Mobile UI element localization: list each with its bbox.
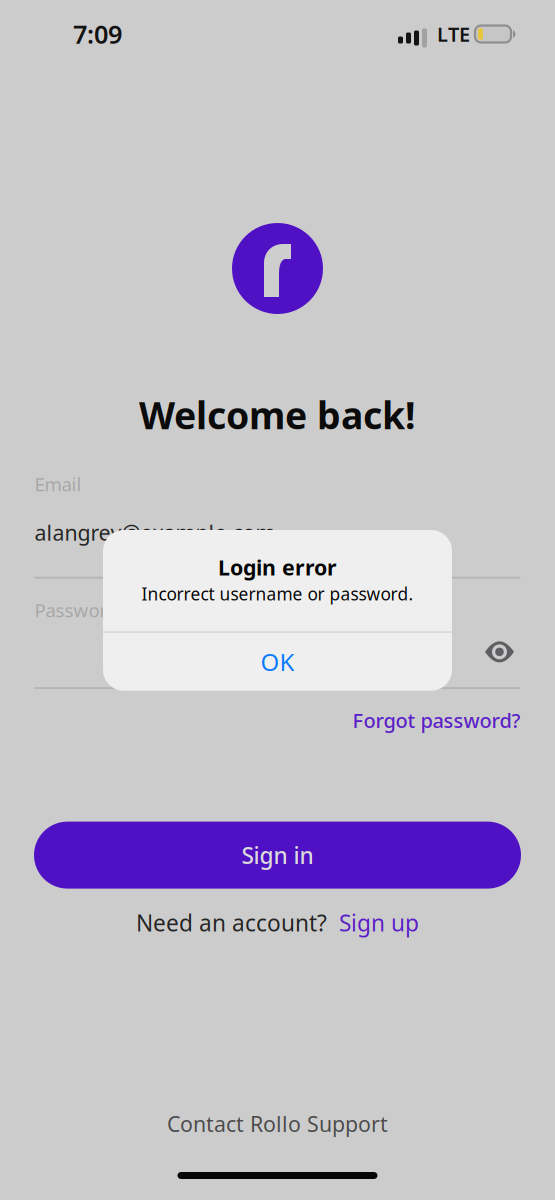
staticText: Sign up: [339, 908, 419, 938]
staticText: Incorrect username or password.: [141, 582, 413, 605]
staticText: Login error: [218, 553, 337, 581]
staticText: OK: [260, 646, 294, 678]
button[interactable]: Forgot password?: [352, 707, 520, 734]
staticText: alangrey@example.com: [34, 518, 275, 547]
button[interactable]: Contact Rollo Support: [167, 1110, 388, 1138]
staticText: Sign in: [241, 840, 313, 870]
staticText: Email: [34, 472, 81, 496]
staticText: Need an account?: [136, 908, 327, 938]
staticText: 7:09: [73, 17, 122, 51]
staticText: Password: [34, 598, 117, 622]
button[interactable]: Sign in: [34, 822, 521, 889]
button[interactable]: Show password: [475, 628, 523, 676]
staticText: Contact Rollo Support: [167, 1110, 388, 1138]
staticText: Forgot password?: [352, 707, 520, 734]
button[interactable]: OK: [103, 633, 452, 691]
staticText: LTE: [437, 21, 470, 47]
button[interactable]: Sign up: [339, 908, 419, 938]
staticText: Welcome back!: [139, 390, 416, 440]
